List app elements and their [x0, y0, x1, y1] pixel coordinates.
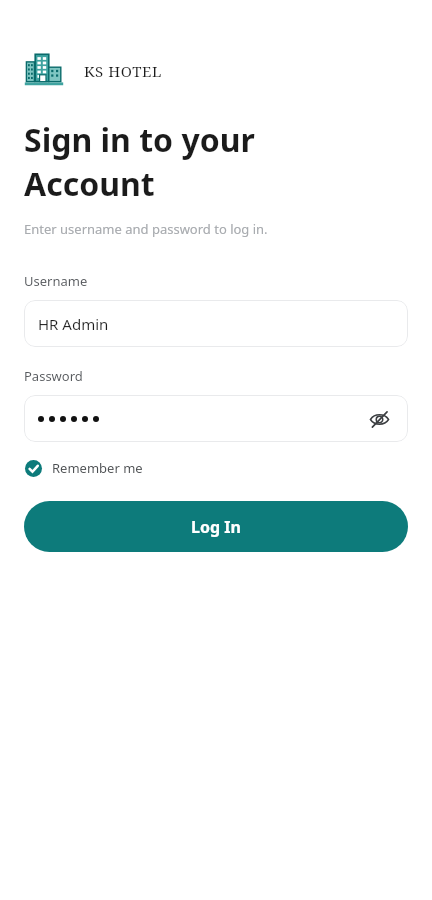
- staticText: Remember me: [52, 459, 143, 477]
- button[interactable]: Show password: [364, 404, 394, 434]
- staticText: Account: [24, 162, 155, 206]
- staticText: Username: [24, 272, 88, 290]
- staticText: Password: [24, 367, 83, 385]
- button[interactable]: HR Admin: [24, 300, 408, 347]
- staticText: Enter username and password to log in.: [24, 220, 268, 238]
- button[interactable]: Show password: [24, 395, 408, 442]
- staticText: Log In: [191, 516, 241, 538]
- staticText: Sign in to your: [24, 118, 255, 162]
- staticText: KS HOTEL: [84, 61, 162, 81]
- staticText: HR Admin: [38, 314, 109, 334]
- button[interactable]: Remember me: [24, 456, 144, 480]
- button[interactable]: Log In: [24, 501, 408, 552]
